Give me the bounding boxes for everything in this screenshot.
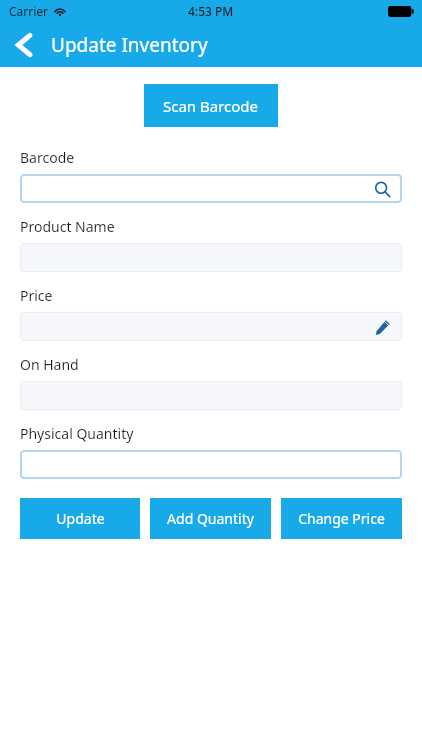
button[interactable] <box>20 381 402 410</box>
staticText: Carrier <box>9 3 49 19</box>
staticText: 4:53 PM <box>188 3 234 19</box>
button[interactable]: Back <box>4 25 44 65</box>
button[interactable] <box>20 243 402 272</box>
staticText: Product Name <box>20 217 115 236</box>
button[interactable]: Edit <box>20 312 402 341</box>
staticText: Price <box>20 286 53 305</box>
button[interactable]: Change Price <box>281 498 402 539</box>
staticText: Physical Quantity <box>20 424 134 443</box>
button[interactable]: Add Quantity <box>150 498 271 539</box>
staticText: On Hand <box>20 355 79 374</box>
staticText: Change Price <box>298 509 385 528</box>
button[interactable]: Search <box>372 179 392 199</box>
button[interactable]: Search <box>20 174 402 203</box>
button[interactable]: Edit <box>372 317 392 337</box>
button[interactable]: Update <box>20 498 140 539</box>
button[interactable]: Scan Barcode <box>144 84 278 127</box>
staticText: Update <box>56 509 105 528</box>
button[interactable] <box>20 450 402 479</box>
staticText: Scan Barcode <box>163 96 259 116</box>
staticText: Barcode <box>20 148 75 167</box>
staticText: Add Quantity <box>167 509 254 528</box>
staticText: Update Inventory <box>51 32 208 58</box>
